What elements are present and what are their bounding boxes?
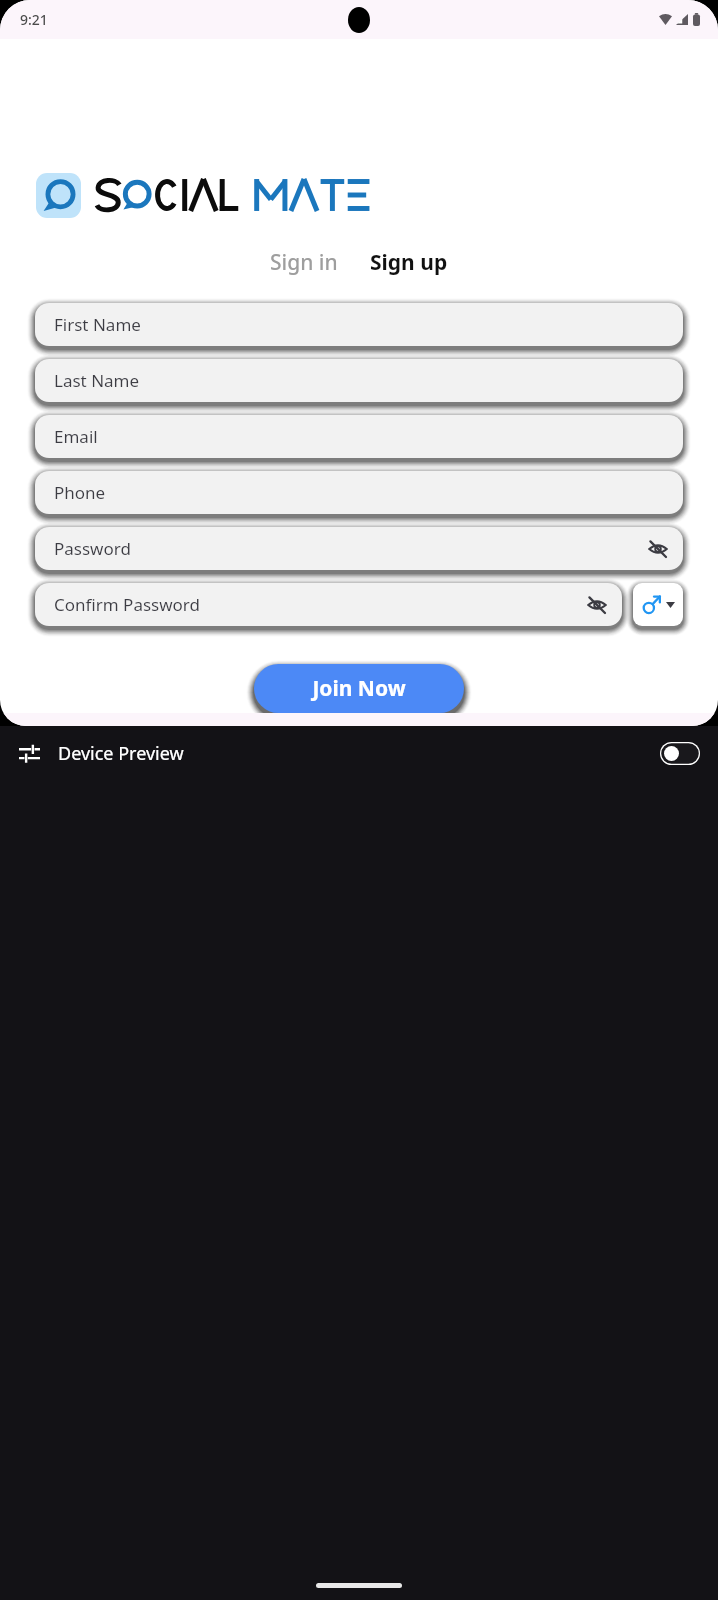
- button[interactable]: Confirm Password: [35, 583, 622, 626]
- button[interactable]: Password: [35, 527, 683, 570]
- staticText: Device Preview: [58, 741, 184, 766]
- button[interactable]: Join Now: [254, 664, 464, 713]
- button[interactable]: Sign in: [264, 244, 344, 281]
- staticText: Email: [54, 425, 98, 448]
- staticText: Sign up: [370, 248, 448, 277]
- button[interactable]: Toggle device preview: [660, 742, 700, 765]
- staticText: Confirm Password: [54, 593, 200, 616]
- button[interactable]: Email: [35, 415, 683, 458]
- button[interactable]: Toggle password visibility: [643, 534, 673, 564]
- staticText: Join Now: [312, 674, 406, 703]
- staticText: 9:21: [20, 10, 48, 29]
- staticText: Phone: [54, 481, 106, 504]
- button[interactable]: Phone: [35, 471, 683, 514]
- button[interactable]: First Name: [35, 303, 683, 346]
- button[interactable]: Sign up: [364, 244, 454, 281]
- button[interactable]: Select gender: [633, 583, 683, 626]
- staticText: First Name: [54, 313, 141, 336]
- staticText: Last Name: [54, 369, 140, 392]
- staticText: Password: [54, 537, 131, 560]
- button[interactable]: Toggle password visibility: [582, 590, 612, 620]
- button[interactable]: Preview settings: [12, 736, 46, 770]
- staticText: Sign in: [270, 248, 338, 277]
- button[interactable]: Last Name: [35, 359, 683, 402]
